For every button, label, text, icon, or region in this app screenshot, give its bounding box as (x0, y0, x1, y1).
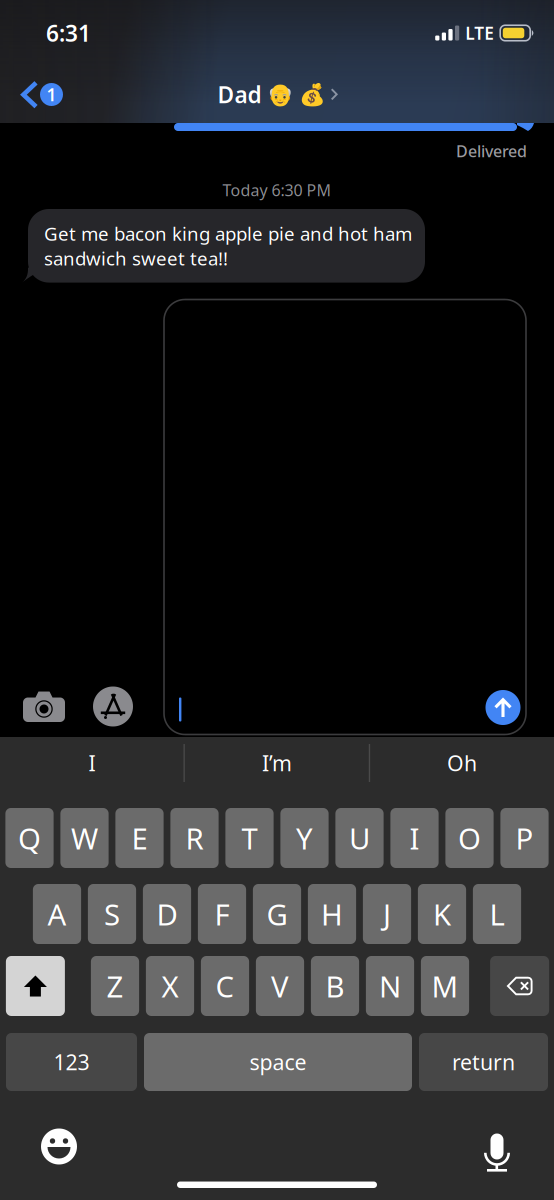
staticText: I (409, 818, 419, 857)
staticText: S (104, 894, 120, 933)
button[interactable]: Emoji (41, 1128, 77, 1164)
staticText: O (458, 818, 481, 857)
staticText: 123 (53, 1048, 89, 1076)
button[interactable]: Dad (215, 66, 338, 123)
button[interactable]: A (33, 884, 81, 944)
staticText: LTE (465, 21, 494, 44)
button[interactable]: P (500, 808, 549, 868)
button[interactable]: S (88, 884, 136, 944)
staticText: U (349, 818, 370, 857)
button[interactable]: M (421, 956, 469, 1016)
staticText: Z (106, 966, 123, 1005)
staticText: Y (296, 818, 313, 857)
staticText: A (47, 894, 66, 933)
button[interactable]: Q (5, 808, 54, 868)
button[interactable]: Dictate (484, 1127, 510, 1166)
staticText: M (431, 966, 458, 1005)
staticText: 💰 (298, 82, 325, 107)
button[interactable]: I’m (184, 737, 370, 789)
staticText: D (156, 894, 177, 933)
button[interactable]: K (418, 884, 466, 944)
button[interactable]: return (419, 1033, 548, 1091)
button[interactable]: Apps (93, 686, 133, 726)
staticText: 6:31 (46, 18, 91, 48)
button[interactable]: B (311, 956, 359, 1016)
staticText: K (433, 894, 451, 933)
button[interactable]: F (198, 884, 246, 944)
staticText: N (379, 966, 401, 1005)
button[interactable]: W (60, 808, 109, 868)
staticText: W (71, 818, 98, 857)
staticText: Q (18, 818, 41, 857)
button[interactable]: 123 (6, 1033, 137, 1091)
button[interactable]: C (201, 956, 249, 1016)
button[interactable]: N (366, 956, 414, 1016)
staticText: 👴 (266, 82, 293, 107)
staticText: J (383, 894, 391, 933)
button[interactable]: U (335, 808, 384, 868)
staticText: V (271, 966, 289, 1005)
staticText: E (131, 818, 147, 857)
button[interactable]: H (308, 884, 356, 944)
staticText: Get me bacon king apple pie and hot ham … (44, 221, 412, 271)
staticText: 1 (46, 83, 56, 106)
button[interactable]: L (473, 884, 521, 944)
button[interactable]: Y (280, 808, 329, 868)
button[interactable]: E (115, 808, 164, 868)
button[interactable]: I (0, 737, 184, 789)
button[interactable]: Delete (490, 956, 549, 1016)
staticText: L (489, 894, 504, 933)
button[interactable]: space (144, 1033, 412, 1091)
staticText: return (452, 1048, 515, 1076)
staticText: X (161, 966, 178, 1005)
staticText: C (215, 966, 234, 1005)
staticText: I (88, 749, 95, 777)
staticText: I’m (262, 749, 292, 777)
button[interactable]: V (256, 956, 304, 1016)
staticText: P (515, 818, 533, 857)
button[interactable]: J (363, 884, 411, 944)
button[interactable]: Camera (23, 691, 65, 722)
staticText: B (325, 966, 344, 1005)
staticText: Oh (447, 749, 477, 777)
staticText: H (321, 894, 343, 933)
staticText: T (241, 818, 257, 857)
button[interactable]: X (146, 956, 194, 1016)
staticText: F (214, 894, 229, 933)
staticText: Delivered (456, 140, 527, 162)
button[interactable]: Back, 1 unread (0, 66, 75, 123)
staticText: Today 6:30 PM (222, 179, 331, 201)
button[interactable]: D (143, 884, 191, 944)
staticText: Dad (217, 79, 261, 109)
button[interactable]: G (253, 884, 301, 944)
button[interactable]: Oh (370, 737, 554, 789)
button[interactable]: Shift (6, 956, 65, 1016)
button[interactable]: Send (485, 690, 520, 725)
button[interactable]: R (170, 808, 219, 868)
staticText: R (185, 818, 203, 857)
staticText: space (249, 1048, 306, 1076)
button[interactable]: O (445, 808, 494, 868)
button[interactable]: Z (91, 956, 139, 1016)
staticText: G (266, 894, 287, 933)
button[interactable]: T (225, 808, 274, 868)
button[interactable]: I (390, 808, 439, 868)
